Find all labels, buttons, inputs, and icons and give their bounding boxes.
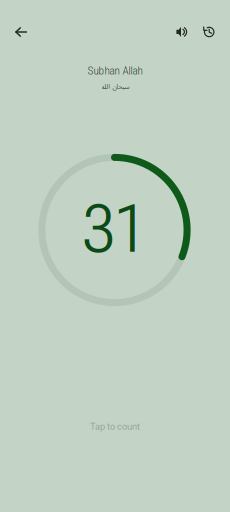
staticText: سبحان الله	[101, 80, 129, 94]
staticText: Tap to count	[90, 421, 140, 432]
button[interactable]: Back	[0, 17, 39, 47]
button[interactable]: History	[195, 16, 230, 48]
button[interactable]: Sound	[162, 16, 195, 47]
staticText: Subhan Allah	[87, 64, 142, 77]
staticText: 31	[83, 190, 147, 268]
